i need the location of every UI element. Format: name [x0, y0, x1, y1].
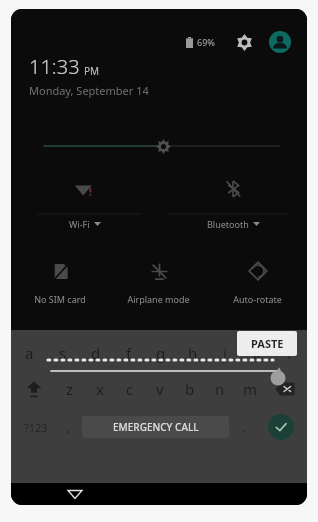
staticText: EMERGENCY CALL	[113, 420, 199, 434]
staticText: PASTE	[251, 336, 284, 351]
button[interactable]: z	[54, 370, 85, 408]
button[interactable]: b	[175, 370, 205, 408]
staticText: Bluetooth	[207, 218, 249, 230]
button[interactable]: Backspace	[265, 370, 305, 408]
staticText: c	[126, 379, 134, 399]
staticText: Airplane mode	[127, 293, 190, 305]
button[interactable]: No SIM card	[11, 257, 109, 315]
button[interactable]: Back	[55, 483, 95, 505]
button[interactable]: Enter	[258, 408, 303, 446]
staticText: 11:33	[29, 53, 80, 80]
button[interactable]: User account	[267, 29, 293, 55]
staticText: 69%	[197, 36, 215, 48]
button[interactable]: Wi-Fi	[11, 172, 159, 234]
button[interactable]: Auto-rotate	[208, 257, 307, 315]
button[interactable]: l	[273, 336, 305, 370]
button[interactable]: d	[79, 336, 112, 370]
button[interactable]: ?123	[15, 408, 56, 446]
button[interactable]: c	[115, 370, 145, 408]
button[interactable]: s	[46, 336, 79, 370]
button[interactable]: m	[235, 370, 265, 408]
staticText: m	[243, 379, 258, 399]
staticText: d	[91, 343, 101, 363]
staticText: Wi-Fi	[69, 218, 90, 230]
staticText: f	[126, 343, 132, 363]
button[interactable]: x	[85, 370, 115, 408]
staticText: k	[253, 343, 262, 363]
staticText: z	[66, 379, 74, 399]
button[interactable]: f	[112, 336, 145, 370]
button[interactable]: Bluetooth	[159, 172, 307, 234]
button[interactable]: a	[13, 336, 46, 370]
staticText: g	[156, 343, 166, 363]
button[interactable]: Brightness	[11, 135, 307, 157]
staticText: x	[96, 379, 104, 399]
button[interactable]: Shift	[13, 370, 54, 408]
staticText: j	[223, 343, 227, 363]
staticText: a	[25, 343, 34, 363]
staticText: PM	[84, 64, 100, 78]
staticText: s	[59, 343, 67, 363]
button[interactable]: Airplane mode	[109, 257, 208, 315]
staticText: No SIM card	[34, 293, 86, 305]
staticText: n	[215, 379, 225, 399]
button[interactable]: j	[209, 336, 241, 370]
staticText: Auto-rotate	[233, 293, 282, 305]
staticText: ?123	[24, 420, 48, 435]
staticText: ,	[67, 418, 71, 436]
staticText: b	[185, 379, 195, 399]
button[interactable]: k	[241, 336, 273, 370]
staticText: h	[188, 343, 198, 363]
staticText: .	[242, 418, 246, 436]
staticText: l	[287, 343, 291, 363]
button[interactable]: Settings	[231, 29, 257, 55]
staticText: v	[156, 379, 164, 399]
button[interactable]: v	[145, 370, 175, 408]
button[interactable]: EMERGENCY CALL	[82, 416, 229, 438]
button[interactable]: h	[177, 336, 209, 370]
button[interactable]: g	[145, 336, 177, 370]
button[interactable]: n	[205, 370, 235, 408]
button[interactable]: PASTE	[237, 331, 297, 356]
staticText: Monday, September 14	[29, 83, 149, 98]
